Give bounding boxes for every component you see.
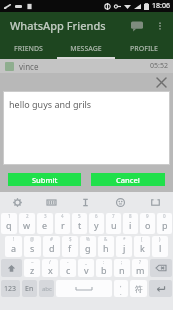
button[interactable]: Cancel [91, 173, 165, 186]
button[interactable]: Floating keyboard [138, 192, 173, 212]
staticText: u [111, 219, 117, 231]
staticText: h [103, 242, 109, 254]
button[interactable]: FRIENDS [0, 39, 57, 59]
button[interactable]: 4 [55, 213, 70, 234]
button[interactable]: * [116, 236, 132, 257]
button[interactable]: # [43, 236, 60, 257]
button[interactable]: More options [150, 16, 170, 36]
staticText: : [103, 259, 105, 265]
button[interactable]: - [60, 259, 76, 277]
staticText: q [6, 219, 12, 231]
staticText: e [42, 219, 48, 231]
button[interactable]: $ [62, 236, 78, 257]
staticText: x [48, 264, 53, 276]
button[interactable]: Settings [0, 192, 34, 212]
staticText: @ [30, 236, 35, 242]
staticText: , [120, 281, 122, 289]
staticText: z [30, 264, 35, 276]
staticText: ) [159, 236, 161, 242]
button[interactable]: Backspace [150, 259, 172, 277]
staticText: _ [85, 259, 87, 265]
staticText: v [84, 264, 89, 276]
staticText: g [85, 242, 91, 254]
button[interactable]: 123 [1, 280, 20, 297]
button[interactable]: Emoji [103, 192, 138, 212]
staticText: 18:06 [152, 1, 170, 11]
staticText: t [78, 219, 82, 231]
staticText: ~ [31, 259, 34, 265]
button[interactable]: ; [114, 259, 130, 277]
staticText: 8 [129, 213, 132, 219]
button[interactable]: 9 [140, 213, 155, 234]
staticText: Submit [32, 175, 58, 185]
button[interactable]: % [80, 236, 96, 257]
button[interactable]: 0 [157, 213, 172, 234]
staticText: 9 [146, 213, 149, 219]
staticText: p [162, 219, 168, 231]
staticText: j [123, 242, 126, 254]
staticText: m [136, 264, 145, 276]
button[interactable]: Chat [124, 13, 150, 39]
staticText: 3 [44, 213, 47, 219]
button[interactable]: 8 [123, 213, 138, 234]
button[interactable]: ) [152, 236, 168, 257]
staticText: ! [13, 236, 15, 242]
button[interactable]: MESSAGE [57, 39, 115, 59]
button[interactable]: & [98, 236, 114, 257]
staticText: FRIENDS [14, 44, 43, 54]
staticText: a [11, 242, 17, 254]
staticText: $ [69, 236, 72, 242]
button[interactable]: ? [132, 259, 148, 277]
button[interactable]: vince [0, 59, 173, 73]
button[interactable]: _ [78, 259, 94, 277]
button[interactable]: Enter [149, 280, 172, 297]
staticText: PROFILE [130, 44, 158, 54]
button[interactable]: Text cursor [68, 192, 103, 212]
button[interactable]: 5 [72, 213, 87, 234]
staticText: y [94, 219, 99, 231]
button[interactable]: Submit [8, 173, 81, 186]
staticText: MESSAGE [70, 44, 102, 54]
button[interactable]: Keyboard layout [34, 192, 68, 212]
button[interactable]: 6 [89, 213, 104, 234]
button[interactable]: Space [56, 280, 112, 297]
staticText: 7 [112, 213, 115, 219]
staticText: f [68, 242, 72, 254]
staticText: % [86, 236, 90, 242]
button[interactable]: 2 [19, 213, 35, 234]
button[interactable]: ! [5, 236, 22, 257]
staticText: . [120, 289, 122, 297]
staticText: d [49, 242, 55, 254]
staticText: r [61, 219, 65, 231]
staticText: ; [121, 259, 123, 265]
staticText: o [145, 219, 151, 231]
button[interactable]: ( [134, 236, 150, 257]
button[interactable]: @ [24, 236, 41, 257]
button[interactable]: PROFILE [115, 39, 173, 59]
button[interactable]: 1 [1, 213, 17, 234]
staticText: l [159, 242, 162, 254]
button[interactable]: 3 [37, 213, 53, 234]
button[interactable]: Shift [1, 259, 22, 277]
staticText: 123 [4, 284, 17, 294]
staticText: 5 [78, 213, 81, 219]
staticText: - [67, 259, 69, 265]
button[interactable]: / [42, 259, 58, 277]
button[interactable]: 符 [130, 280, 147, 297]
staticText: En [25, 284, 34, 294]
staticText: ? [139, 259, 141, 265]
button[interactable]: ~ [24, 259, 40, 277]
staticText: 05:52 [150, 61, 168, 71]
button[interactable]: 7 [106, 213, 121, 234]
button[interactable]: abc [39, 280, 54, 297]
button[interactable]: Punctuation [114, 280, 128, 297]
staticText: WhatsApp Friends [10, 18, 106, 33]
button[interactable]: Close [152, 73, 170, 91]
button[interactable]: : [96, 259, 112, 277]
staticText: 6 [95, 213, 98, 219]
staticText: 4 [61, 213, 64, 219]
staticText: 2 [26, 213, 29, 219]
staticText: k [140, 242, 145, 254]
button[interactable]: En [22, 280, 37, 297]
button[interactable]: hello guys and grils [3, 91, 170, 165]
